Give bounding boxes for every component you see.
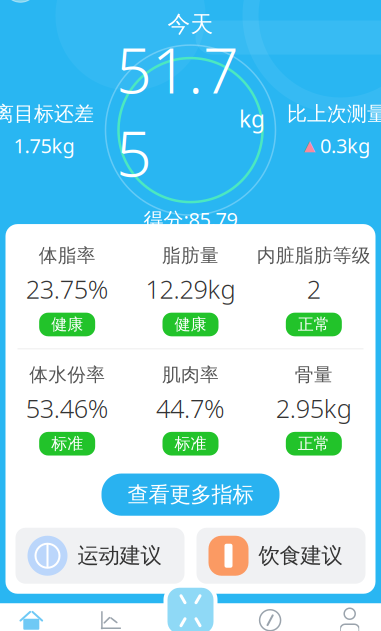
staticText: 标准 [174,434,206,454]
staticText: 离目标还差 [0,101,94,126]
staticText: 今天 [167,10,213,38]
staticText: 标准 [51,434,83,454]
button[interactable]: 饮食建议 [196,528,365,584]
button[interactable]: 趋势 [71,603,151,631]
staticText: 饮食建议 [258,543,342,569]
staticText: 健康 [174,315,206,334]
staticText: 体脂率 [39,244,96,267]
staticText: 53.46% [26,391,109,425]
staticText: 得分:85.79 [143,206,237,233]
staticText: 查看更多指标 [127,481,253,508]
button[interactable]: 社区 [230,603,310,631]
button[interactable]: 运动建议 [15,528,184,584]
button[interactable]: 上称 [163,584,217,631]
staticText: 12.29kg [145,272,235,306]
staticText: 2.95kg [276,391,352,425]
staticText: 51.75 [116,28,239,194]
staticText: 正常 [298,315,330,334]
staticText: 0.3kg [320,132,370,159]
staticText: 44.7% [156,391,225,425]
button[interactable]: 查看更多指标 [101,473,279,516]
staticText: 23.75% [26,272,109,306]
staticText: 运动建议 [77,543,161,569]
button[interactable]: Profile [3,0,37,2]
staticText: 1.75kg [13,132,74,159]
staticText: kg [239,104,265,134]
staticText: ▲ [304,137,315,154]
staticText: 2 [307,272,321,306]
staticText: 正常 [298,434,330,454]
staticText: 体水份率 [29,363,105,386]
staticText: 骨量 [295,363,333,386]
staticText: 内脏脂肪等级 [257,244,371,267]
staticText: 脂肪量 [162,244,219,267]
staticText: 健康 [51,315,83,334]
staticText: 比上次测量 [287,101,381,126]
button[interactable]: 首页 [0,603,71,631]
staticText: 肌肉率 [162,363,219,386]
button[interactable]: 我 [310,603,381,631]
